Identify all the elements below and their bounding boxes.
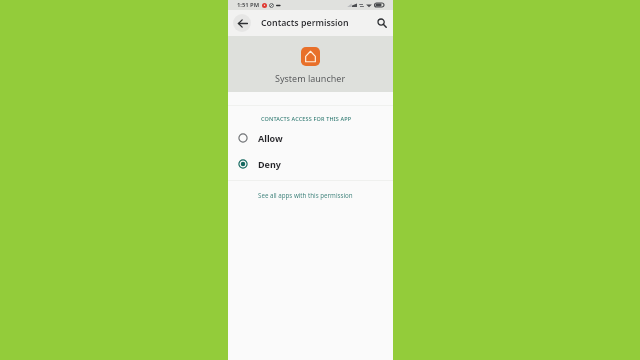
staticText: Contacts permission [261, 17, 349, 29]
staticText: 1:51 PM [237, 1, 260, 9]
staticText: Allow [258, 132, 283, 144]
staticText: See all apps with this permission [258, 191, 353, 199]
staticText: CONTACTS ACCESS FOR THIS APP [261, 115, 352, 122]
button[interactable]: Back [233, 14, 251, 32]
staticText: System launcher [275, 72, 346, 84]
button[interactable]: See all apps with this permission [228, 182, 393, 208]
button[interactable]: Deny [228, 151, 393, 177]
staticText: Deny [258, 158, 281, 170]
button[interactable]: Search [372, 13, 392, 33]
button[interactable]: Allow [228, 125, 393, 151]
